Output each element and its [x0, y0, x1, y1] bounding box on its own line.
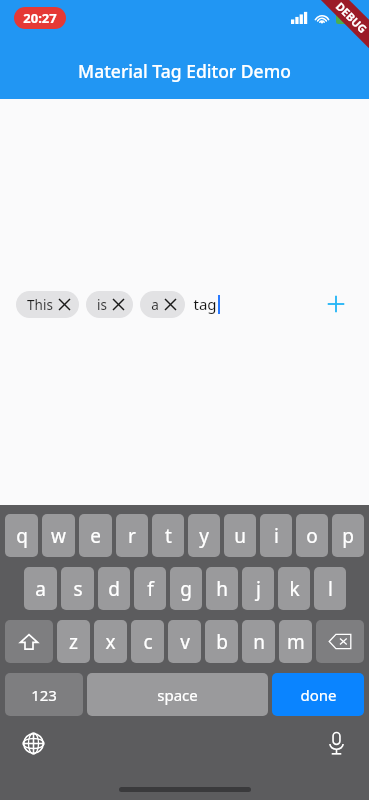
button[interactable]: i — [260, 514, 292, 557]
button[interactable]: w — [42, 514, 75, 557]
button[interactable]: m — [279, 620, 312, 663]
staticText: 123 — [31, 685, 57, 705]
button[interactable]: Voice input — [319, 726, 353, 760]
button[interactable]: p — [332, 514, 364, 557]
button[interactable]: done — [272, 673, 364, 716]
button[interactable]: q — [5, 514, 38, 557]
staticText: a — [35, 576, 46, 602]
staticText: h — [216, 576, 228, 602]
button[interactable]: e — [79, 514, 112, 557]
staticText: n — [253, 629, 265, 655]
button[interactable]: b — [205, 620, 238, 663]
staticText: p — [342, 523, 354, 549]
button[interactable]: v — [168, 620, 201, 663]
button[interactable]: k — [278, 567, 310, 610]
button[interactable]: c — [131, 620, 164, 663]
button[interactable]: This — [16, 291, 79, 318]
staticText: e — [90, 523, 101, 549]
staticText: r — [128, 523, 136, 549]
staticText: m — [287, 629, 305, 655]
button[interactable]: x — [94, 620, 127, 663]
staticText: done — [300, 685, 337, 705]
staticText: g — [180, 576, 192, 602]
button[interactable]: n — [242, 620, 275, 663]
staticText: space — [157, 685, 198, 705]
button[interactable]: a — [24, 567, 57, 610]
button[interactable]: z — [57, 620, 90, 663]
staticText: 20:27 — [23, 9, 57, 27]
button[interactable]: r — [116, 514, 148, 557]
staticText: tag — [193, 294, 217, 314]
staticText: j — [256, 576, 261, 602]
staticText: t — [165, 523, 172, 549]
button[interactable]: g — [170, 567, 202, 610]
staticText: x — [105, 629, 116, 655]
staticText: i — [274, 523, 279, 549]
staticText: q — [16, 523, 28, 549]
staticText: w — [51, 523, 66, 549]
staticText: y — [199, 523, 209, 549]
button[interactable]: l — [314, 567, 346, 610]
staticText: Material Tag Editor Demo — [78, 59, 291, 83]
staticText: is — [97, 296, 107, 314]
button[interactable]: t — [152, 514, 184, 557]
button[interactable]: Shift — [5, 620, 53, 663]
staticText: k — [289, 576, 300, 602]
staticText: DEBUG — [333, 0, 369, 36]
button[interactable]: Add tag — [319, 287, 353, 321]
button[interactable]: Change keyboard language — [16, 726, 50, 760]
button[interactable]: y — [188, 514, 220, 557]
button[interactable]: h — [206, 567, 238, 610]
button[interactable]: is — [86, 291, 133, 318]
button[interactable]: 123 — [5, 673, 83, 716]
button[interactable]: Backspace — [316, 620, 364, 663]
staticText: o — [306, 523, 318, 549]
button[interactable]: u — [224, 514, 256, 557]
staticText: d — [108, 576, 120, 602]
staticText: f — [147, 576, 154, 602]
button[interactable]: s — [61, 567, 94, 610]
staticText: u — [234, 523, 246, 549]
button[interactable]: j — [242, 567, 274, 610]
staticText: l — [328, 576, 333, 602]
staticText: a — [151, 296, 159, 314]
staticText: v — [180, 629, 190, 655]
staticText: s — [73, 576, 83, 602]
button[interactable]: a — [140, 291, 185, 318]
staticText: This — [27, 296, 53, 314]
staticText: z — [69, 629, 78, 655]
button[interactable]: d — [98, 567, 130, 610]
staticText: b — [216, 629, 228, 655]
staticText: c — [143, 629, 153, 655]
button[interactable]: o — [296, 514, 328, 557]
button[interactable]: f — [134, 567, 166, 610]
button[interactable]: space — [87, 673, 268, 716]
